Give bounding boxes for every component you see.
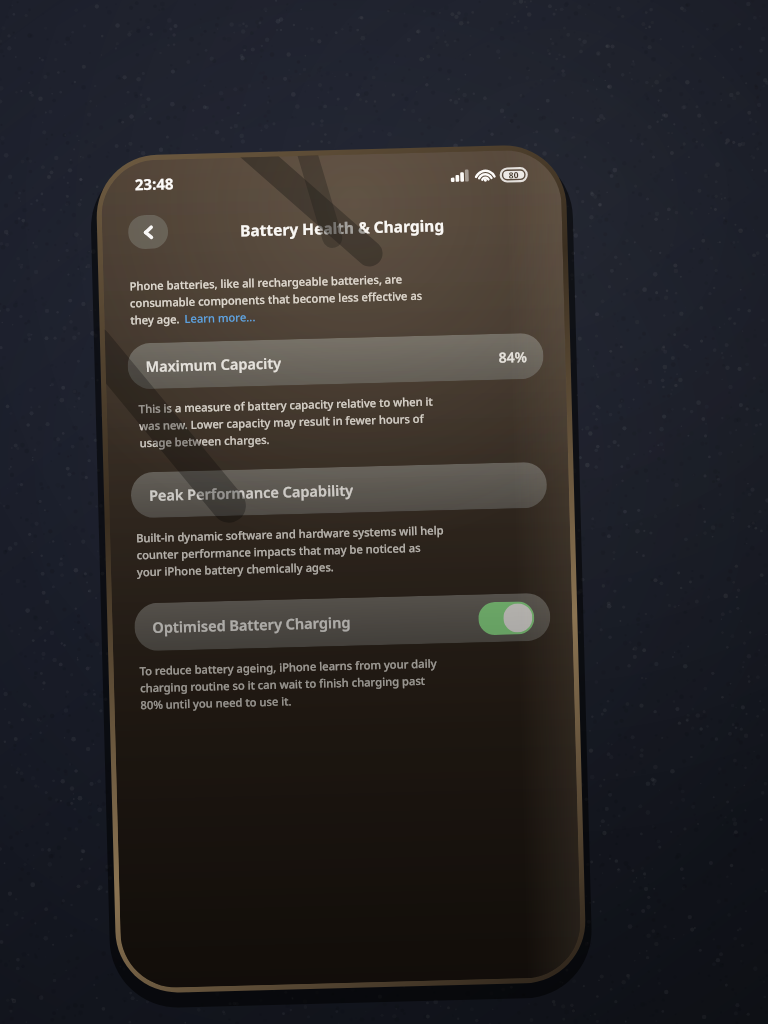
staticText: counter performance impacts that may be … <box>136 540 421 562</box>
button[interactable]: Back <box>128 214 169 249</box>
button[interactable]: Maximum Capacity <box>127 333 544 389</box>
staticText: 80 <box>509 169 519 181</box>
staticText: was new. Lower capacity may result in fe… <box>139 411 424 433</box>
staticText: charging routine so it can wait to finis… <box>140 673 426 695</box>
staticText: To reduce battery ageing, iPhone learns … <box>139 655 438 678</box>
staticText: your iPhone battery chemically ages. <box>137 559 334 579</box>
staticText: Built-in dynamic software and hardware s… <box>136 522 444 545</box>
staticText: Phone batteries, like all rechargeable b… <box>129 271 403 293</box>
staticText: Optimised Battery Charging <box>152 608 479 637</box>
staticText: Battery Health & Charging <box>240 214 444 240</box>
staticText: 80% until you need to use it. <box>140 693 293 712</box>
staticText: 84% <box>498 347 528 367</box>
staticText: usage between charges. <box>139 432 270 450</box>
staticText: they age. <box>130 311 181 327</box>
button[interactable]: Peak Performance Capability <box>130 462 547 518</box>
staticText: Maximum Capacity <box>145 347 499 376</box>
staticText: 23:48 <box>135 173 174 194</box>
button[interactable]: Optimised Battery Charging <box>134 592 551 651</box>
staticText: consumable components that become less e… <box>130 288 423 310</box>
button[interactable]: Learn more... <box>184 309 256 326</box>
button[interactable]: Optimised Battery Charging, on <box>478 601 535 635</box>
staticText: Peak Performance Capability <box>149 475 531 505</box>
staticText: This is a measure of battery capacity re… <box>138 393 434 416</box>
